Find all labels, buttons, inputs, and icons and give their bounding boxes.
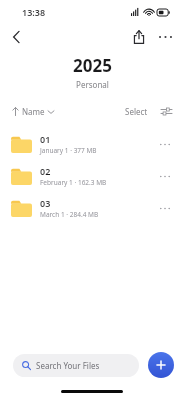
staticText: March 1 · 284.4 MB <box>40 210 99 219</box>
button[interactable]: Add <box>148 352 174 378</box>
button[interactable]: More options <box>154 26 176 48</box>
button[interactable]: Name <box>10 104 56 119</box>
button[interactable]: 02 <box>0 160 184 192</box>
button[interactable]: More options for 02 <box>155 166 175 186</box>
staticText: 03 <box>40 197 51 209</box>
staticText: January 1 · 377 MB <box>40 146 97 155</box>
button[interactable]: More options for 01 <box>155 134 175 154</box>
staticText: 13:38 <box>22 6 46 18</box>
staticText: 02 <box>40 165 51 177</box>
button[interactable]: 03 <box>0 192 184 224</box>
staticText: 2025 <box>73 54 112 77</box>
button[interactable]: Back <box>5 26 27 48</box>
staticText: Name <box>22 106 45 117</box>
staticText: 01 <box>40 133 51 145</box>
button[interactable]: Share <box>128 26 150 48</box>
staticText: Search Your Files <box>36 360 100 371</box>
button[interactable]: Filter options <box>158 103 174 119</box>
button[interactable]: 01 <box>0 128 184 160</box>
staticText: Personal <box>76 79 109 90</box>
staticText: Select <box>125 106 148 117</box>
button[interactable]: Select <box>123 104 150 119</box>
button[interactable]: Search Your Files <box>13 354 139 377</box>
button[interactable]: More options for 03 <box>155 198 175 218</box>
staticText: February 1 · 162.3 MB <box>40 178 107 187</box>
